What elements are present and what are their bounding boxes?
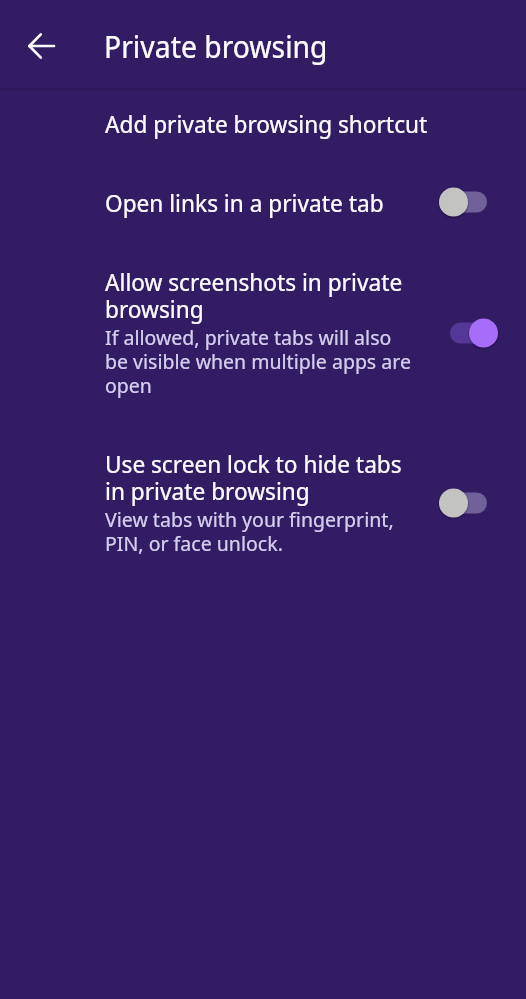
button[interactable]: Allow screenshots in private browsing xyxy=(0,245,526,424)
staticText: Use screen lock to hide tabs in private … xyxy=(105,452,414,506)
staticText: Open links in a private tab xyxy=(105,191,384,218)
button[interactable]: On xyxy=(439,317,498,349)
staticText: Allow screenshots in private browsing xyxy=(105,270,414,324)
button[interactable]: Navigate up xyxy=(12,15,70,73)
button[interactable]: Off xyxy=(439,487,498,519)
button[interactable]: Add private browsing shortcut xyxy=(0,93,526,164)
staticText: Add private browsing shortcut xyxy=(105,112,428,139)
button[interactable]: Open links in a private tab xyxy=(0,164,526,245)
button[interactable]: Use screen lock to hide tabs in private … xyxy=(0,424,526,582)
staticText: View tabs with your fingerprint, PIN, or… xyxy=(105,509,414,557)
staticText: Private browsing xyxy=(104,26,328,67)
staticText: If allowed, private tabs will also be vi… xyxy=(105,327,414,399)
button[interactable]: Off xyxy=(439,186,498,218)
